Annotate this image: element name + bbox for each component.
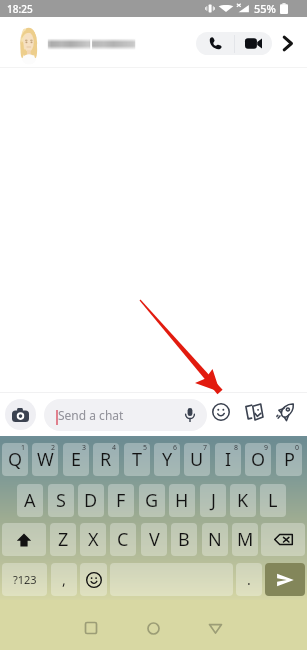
button[interactable]: Recents	[75, 612, 107, 644]
staticText: ,	[62, 570, 66, 589]
button[interactable]: L	[260, 484, 286, 517]
button[interactable]: Call	[196, 32, 234, 55]
button[interactable]: S	[48, 484, 74, 517]
button[interactable]: X	[80, 523, 106, 556]
button[interactable]: V	[141, 523, 167, 556]
button[interactable]: Shift	[2, 523, 46, 556]
button[interactable]: U	[184, 443, 210, 476]
button[interactable]: Camera	[5, 399, 36, 430]
staticText: Z	[58, 527, 69, 552]
button[interactable]: Send a chat	[44, 399, 207, 431]
button[interactable]: R	[93, 443, 119, 476]
staticText: U	[190, 447, 204, 472]
staticText: X	[88, 527, 99, 552]
button[interactable]: Y	[154, 443, 180, 476]
staticText: B	[178, 527, 190, 552]
staticText: 3	[82, 443, 87, 453]
staticText: 55%	[254, 1, 276, 16]
button[interactable]	[110, 563, 233, 596]
button[interactable]: Home	[137, 612, 169, 644]
staticText: D	[84, 488, 98, 513]
staticText: O	[251, 447, 266, 472]
staticText: T	[132, 447, 143, 472]
staticText: 7	[203, 443, 208, 453]
button[interactable]: K	[230, 484, 256, 517]
button[interactable]: I	[215, 443, 241, 476]
staticText: .	[247, 570, 251, 589]
staticText: 2	[51, 443, 56, 453]
button[interactable]: Profile	[12, 23, 46, 63]
staticText: W	[37, 447, 54, 472]
staticText: 1	[21, 443, 26, 453]
button[interactable]: E	[63, 443, 89, 476]
button[interactable]: Send	[265, 563, 305, 596]
button[interactable]: Q	[2, 443, 28, 476]
staticText: N	[208, 527, 222, 552]
button[interactable]: ?123	[2, 563, 47, 596]
staticText: 18:25	[7, 2, 33, 16]
button[interactable]: M	[232, 523, 258, 556]
staticText: P	[284, 447, 295, 472]
button[interactable]: J	[200, 484, 226, 517]
staticText: S	[56, 488, 66, 513]
button[interactable]: T	[124, 443, 150, 476]
staticText: L	[268, 488, 278, 513]
button[interactable]: D	[78, 484, 104, 517]
staticText: Y	[162, 447, 173, 472]
button[interactable]: N	[202, 523, 228, 556]
button[interactable]: P	[276, 443, 302, 476]
staticText: Q	[8, 447, 23, 472]
staticText: G	[145, 488, 159, 513]
staticText: 0	[295, 443, 300, 453]
staticText: C	[117, 527, 129, 552]
staticText: H	[175, 488, 189, 513]
staticText: 6	[173, 443, 178, 453]
button[interactable]: B	[171, 523, 197, 556]
staticText: 8	[234, 443, 239, 453]
button[interactable]: Games	[273, 400, 297, 424]
staticText: ?123	[13, 572, 37, 587]
staticText: M	[237, 527, 254, 552]
staticText: E	[71, 447, 82, 472]
button[interactable]: C	[110, 523, 136, 556]
button[interactable]: H	[169, 484, 195, 517]
button[interactable]: W	[32, 443, 58, 476]
staticText: 4	[112, 443, 117, 453]
button[interactable]: Emoji	[80, 563, 107, 596]
staticText: 9	[264, 443, 269, 453]
other: Voice message	[185, 408, 195, 422]
button[interactable]: O	[245, 443, 271, 476]
button[interactable]: Video call	[235, 32, 272, 55]
button[interactable]: Back	[199, 612, 231, 644]
button[interactable]: F	[108, 484, 134, 517]
button[interactable]: G	[139, 484, 165, 517]
staticText: V	[149, 527, 160, 552]
button[interactable]: .	[236, 563, 262, 596]
button[interactable]: Stickers	[241, 400, 265, 424]
button[interactable]: Emoji	[209, 400, 233, 424]
staticText: J	[211, 488, 216, 513]
button[interactable]: A	[17, 484, 43, 517]
button[interactable]: ,	[51, 563, 77, 596]
staticText: A	[24, 488, 36, 513]
button[interactable]: Z	[50, 523, 76, 556]
staticText: R	[100, 447, 112, 472]
button[interactable]: Backspace	[261, 523, 305, 556]
staticText: Send a chat	[58, 407, 124, 423]
staticText: K	[237, 488, 249, 513]
button[interactable]: Open profile	[274, 30, 300, 56]
staticText: F	[116, 488, 126, 513]
staticText: 5	[143, 443, 148, 453]
staticText: I	[225, 447, 232, 472]
